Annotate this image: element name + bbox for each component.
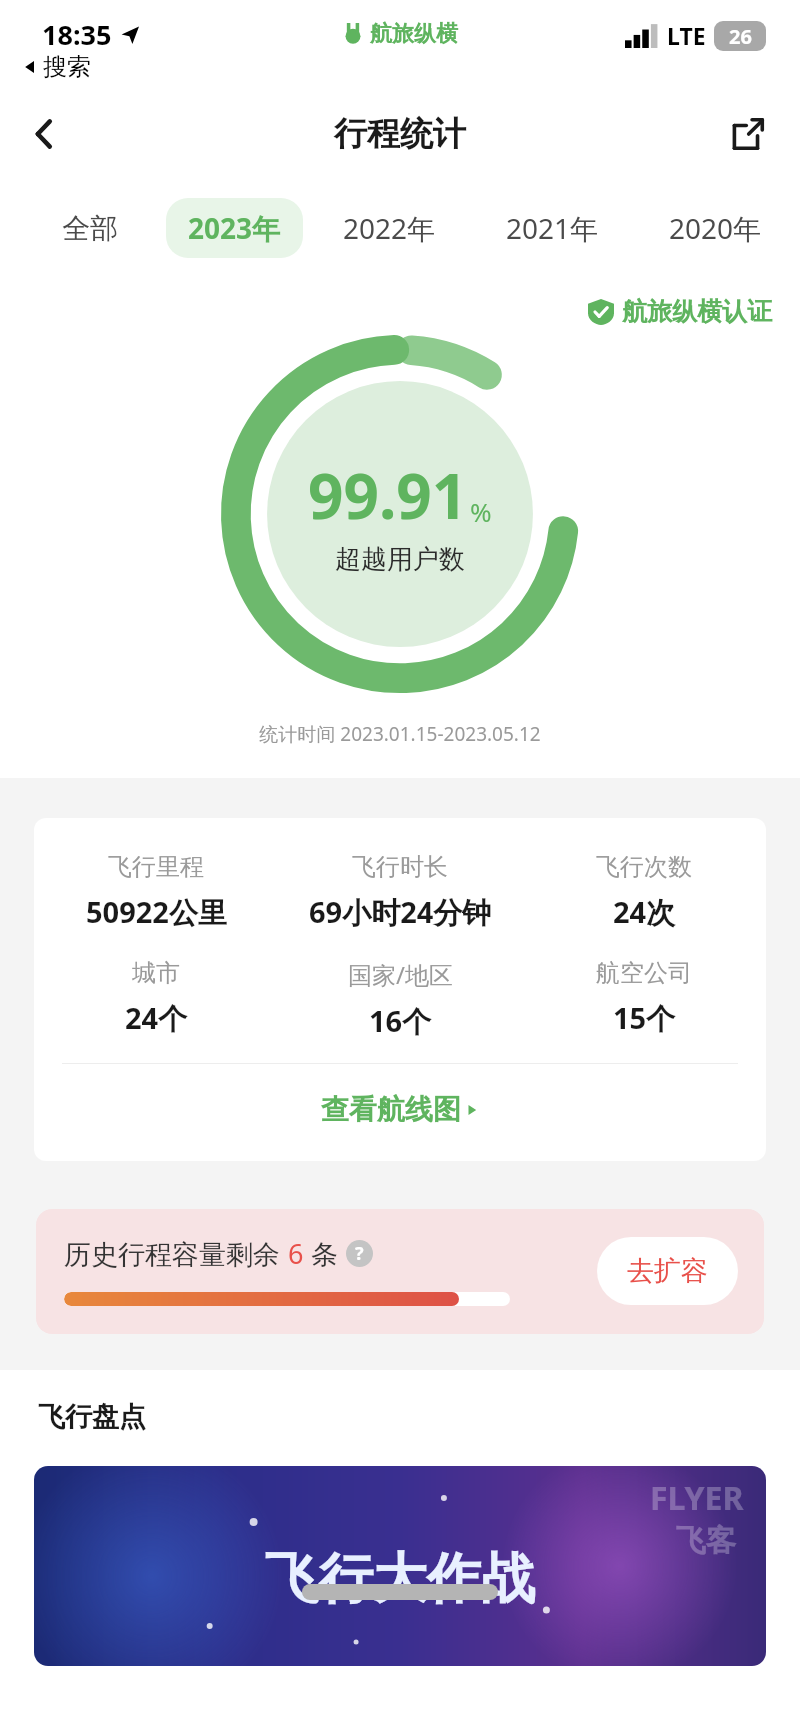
staticText: 2022年: [343, 209, 436, 247]
staticText: 全部: [62, 211, 118, 246]
staticText: 飞行大作战: [265, 1545, 535, 1613]
staticText: 飞行盘点: [38, 1400, 146, 1434]
staticText: 统计时间 2023.01.15-2023.05.12: [0, 721, 800, 747]
staticText: 99.91: [308, 453, 468, 537]
button[interactable]: Help: [346, 1240, 373, 1267]
staticText: 2021年: [506, 209, 599, 247]
staticText: FLYER: [650, 1476, 744, 1520]
staticText: 飞行时长: [352, 852, 448, 882]
staticText: 历史行程容量剩余: [64, 1235, 288, 1272]
staticText: 2023年: [188, 209, 281, 247]
button[interactable]: Share: [718, 104, 778, 164]
staticText: 69小时24分钟: [309, 892, 492, 932]
staticText: 去扩容: [627, 1254, 708, 1288]
button[interactable]: 历史行程容量剩余: [36, 1209, 764, 1334]
staticText: 搜索: [43, 52, 91, 82]
button[interactable]: 全部: [40, 200, 140, 257]
staticText: 行程统计: [334, 113, 466, 155]
staticText: 超越用户数: [335, 543, 465, 576]
staticText: 24个: [125, 998, 188, 1038]
staticText: 城市: [132, 958, 180, 988]
staticText: 航旅纵横认证: [622, 296, 772, 327]
staticText: LTE: [667, 20, 706, 51]
staticText: 6: [288, 1235, 304, 1272]
staticText: 航旅纵横: [370, 20, 458, 48]
staticText: 50922公里: [86, 892, 227, 932]
staticText: 查看航线图: [321, 1092, 461, 1127]
staticText: %: [470, 494, 492, 529]
button[interactable]: 搜索: [22, 52, 91, 82]
staticText: ?: [355, 1241, 364, 1266]
button[interactable]: 飞行大作战: [34, 1466, 766, 1666]
button[interactable]: 2023年: [166, 198, 303, 258]
staticText: 飞行里程: [108, 852, 204, 882]
staticText: 2020年: [669, 209, 762, 247]
staticText: 条: [304, 1235, 346, 1272]
staticText: 航空公司: [596, 958, 692, 988]
staticText: 18:35: [42, 16, 112, 53]
button[interactable]: Back: [14, 103, 76, 165]
staticText: 26: [729, 23, 752, 50]
button[interactable]: 去扩容: [597, 1237, 738, 1305]
button[interactable]: 2021年: [484, 198, 621, 258]
staticText: 24次: [613, 892, 676, 932]
button[interactable]: 查看航线图: [34, 1064, 766, 1155]
staticText: 15个: [613, 998, 676, 1038]
button[interactable]: 2022年: [321, 198, 458, 258]
staticText: 国家/地区: [348, 958, 453, 991]
button[interactable]: 2020年: [647, 198, 784, 258]
staticText: 16个: [369, 1001, 432, 1041]
staticText: 飞客: [676, 1522, 736, 1560]
staticText: 飞行次数: [596, 852, 692, 882]
